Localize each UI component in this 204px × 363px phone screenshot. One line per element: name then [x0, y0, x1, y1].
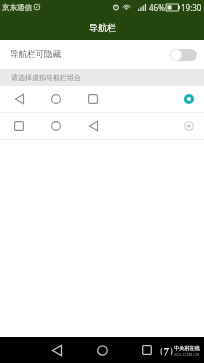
button[interactable]: 导航栏可隐藏	[0, 40, 204, 69]
button[interactable]: Back	[48, 337, 66, 363]
staticText: 导航栏可隐藏	[10, 49, 61, 60]
staticText: 中关村在线	[174, 345, 200, 352]
button[interactable]: Recents	[138, 337, 156, 363]
button[interactable]	[0, 113, 204, 139]
staticText: 46%	[149, 2, 165, 13]
staticText: 导航栏	[89, 22, 116, 33]
button[interactable]: Home	[93, 337, 111, 363]
staticText: 请选择虚拟导航栏组合	[11, 73, 81, 82]
button[interactable]	[0, 86, 204, 112]
staticText: ZOL.COM.CN	[174, 352, 200, 358]
staticText: 19:30	[181, 2, 202, 13]
staticText: 京东通信	[2, 3, 32, 12]
